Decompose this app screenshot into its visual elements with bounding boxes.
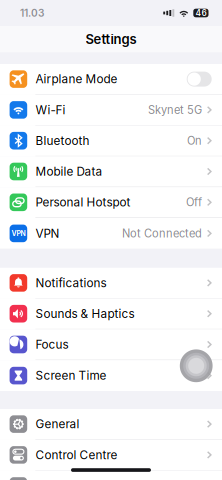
button[interactable]: Focus <box>0 329 222 360</box>
button[interactable]: Mobile Data <box>0 156 222 187</box>
button[interactable]: Airplane Mode <box>0 64 222 95</box>
button[interactable]: VPN <box>0 218 222 249</box>
button[interactable]: Personal Hotspot <box>0 187 222 218</box>
staticText: Screen Time <box>35 368 106 383</box>
staticText: VPN <box>11 229 25 238</box>
button[interactable]: Control Centre <box>0 440 222 471</box>
staticText: Skynet 5G <box>148 103 202 117</box>
staticText: Mobile Data <box>35 164 102 179</box>
staticText: Bluetooth <box>35 134 89 148</box>
staticText: Sounds & Haptics <box>35 307 134 321</box>
button[interactable]: AssistiveTouch <box>180 349 213 382</box>
button[interactable]: Screen Time <box>0 360 222 391</box>
button[interactable]: General <box>0 409 222 440</box>
staticText: Settings <box>85 31 136 47</box>
staticText: Wi-Fi <box>35 103 65 117</box>
staticText: General <box>35 417 79 431</box>
button[interactable]: Display & Brightness <box>0 471 222 480</box>
staticText: Control Centre <box>35 448 117 462</box>
button[interactable]: Sounds & Haptics <box>0 299 222 329</box>
staticText: VPN <box>35 226 59 240</box>
staticText: Off <box>186 196 202 209</box>
button[interactable]: Notifications <box>0 268 222 299</box>
staticText: Airplane Mode <box>35 72 117 86</box>
staticText: 46 <box>195 8 206 18</box>
staticText: Notifications <box>35 276 106 290</box>
button[interactable]: Bluetooth <box>0 126 222 156</box>
staticText: Not Connected <box>122 227 202 240</box>
staticText: Focus <box>35 337 68 352</box>
staticText: On <box>187 134 202 147</box>
staticText: 11.03 <box>20 7 44 19</box>
staticText: Personal Hotspot <box>35 195 130 209</box>
button[interactable]: Wi-Fi <box>0 95 222 126</box>
